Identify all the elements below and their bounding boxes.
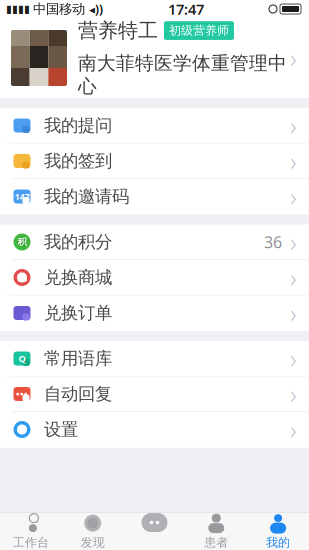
staticText: 我的积分: [44, 231, 112, 253]
staticText: ›: [290, 180, 297, 213]
staticText: 工作台: [13, 535, 49, 550]
button[interactable]: 积: [0, 224, 309, 260]
staticText: 兑: [17, 272, 26, 283]
button[interactable]: Q: [0, 341, 309, 376]
staticText: ◂)): [89, 1, 103, 17]
staticText: 147: [14, 190, 29, 203]
staticText: ▮▮▮▮: [6, 3, 30, 15]
staticText: 积: [17, 236, 26, 248]
staticText: ›: [290, 296, 297, 330]
staticText: ›: [290, 413, 297, 446]
staticText: 兑换订单: [44, 302, 112, 324]
staticText: ›: [290, 225, 297, 259]
staticText: 患者: [204, 535, 228, 550]
staticText: 南大菲特医学体重管理中心: [78, 52, 287, 98]
button[interactable]: [0, 295, 309, 331]
button[interactable]: [0, 108, 309, 143]
staticText: ›: [290, 144, 297, 178]
button[interactable]: [124, 513, 185, 550]
staticText: 兑换商城: [44, 267, 112, 288]
staticText: ›: [290, 41, 297, 75]
button[interactable]: •••: [0, 376, 309, 412]
staticText: 中国移动: [33, 1, 85, 17]
staticText: 初级营养师: [169, 23, 229, 38]
button[interactable]: 患者: [185, 513, 247, 550]
button[interactable]: 兑: [0, 260, 309, 295]
staticText: ›: [290, 261, 297, 294]
staticText: ›: [290, 109, 297, 142]
staticText: 我的签到: [44, 150, 112, 172]
button[interactable]: 工作台: [0, 513, 62, 550]
staticText: ›: [290, 377, 297, 411]
staticText: ›: [290, 342, 297, 375]
button[interactable]: [0, 412, 309, 447]
staticText: 我的提问: [44, 115, 112, 136]
button[interactable]: 发现: [62, 513, 124, 550]
staticText: Q: [18, 352, 25, 365]
staticText: 17:47: [168, 0, 204, 19]
staticText: 我的邀请码: [44, 186, 129, 207]
staticText: 设置: [44, 419, 78, 440]
staticText: •••: [16, 388, 28, 400]
button[interactable]: 147: [0, 179, 309, 214]
button[interactable]: [0, 143, 309, 179]
staticText: 营养特工: [78, 18, 158, 43]
staticText: 常用语库: [44, 348, 112, 369]
staticText: 我的: [266, 535, 290, 550]
staticText: 36: [264, 231, 282, 253]
staticText: 发现: [81, 535, 105, 550]
button[interactable]: 我的: [247, 513, 309, 550]
button[interactable]: 营养特工: [0, 18, 309, 98]
staticText: 自动回复: [44, 383, 112, 405]
